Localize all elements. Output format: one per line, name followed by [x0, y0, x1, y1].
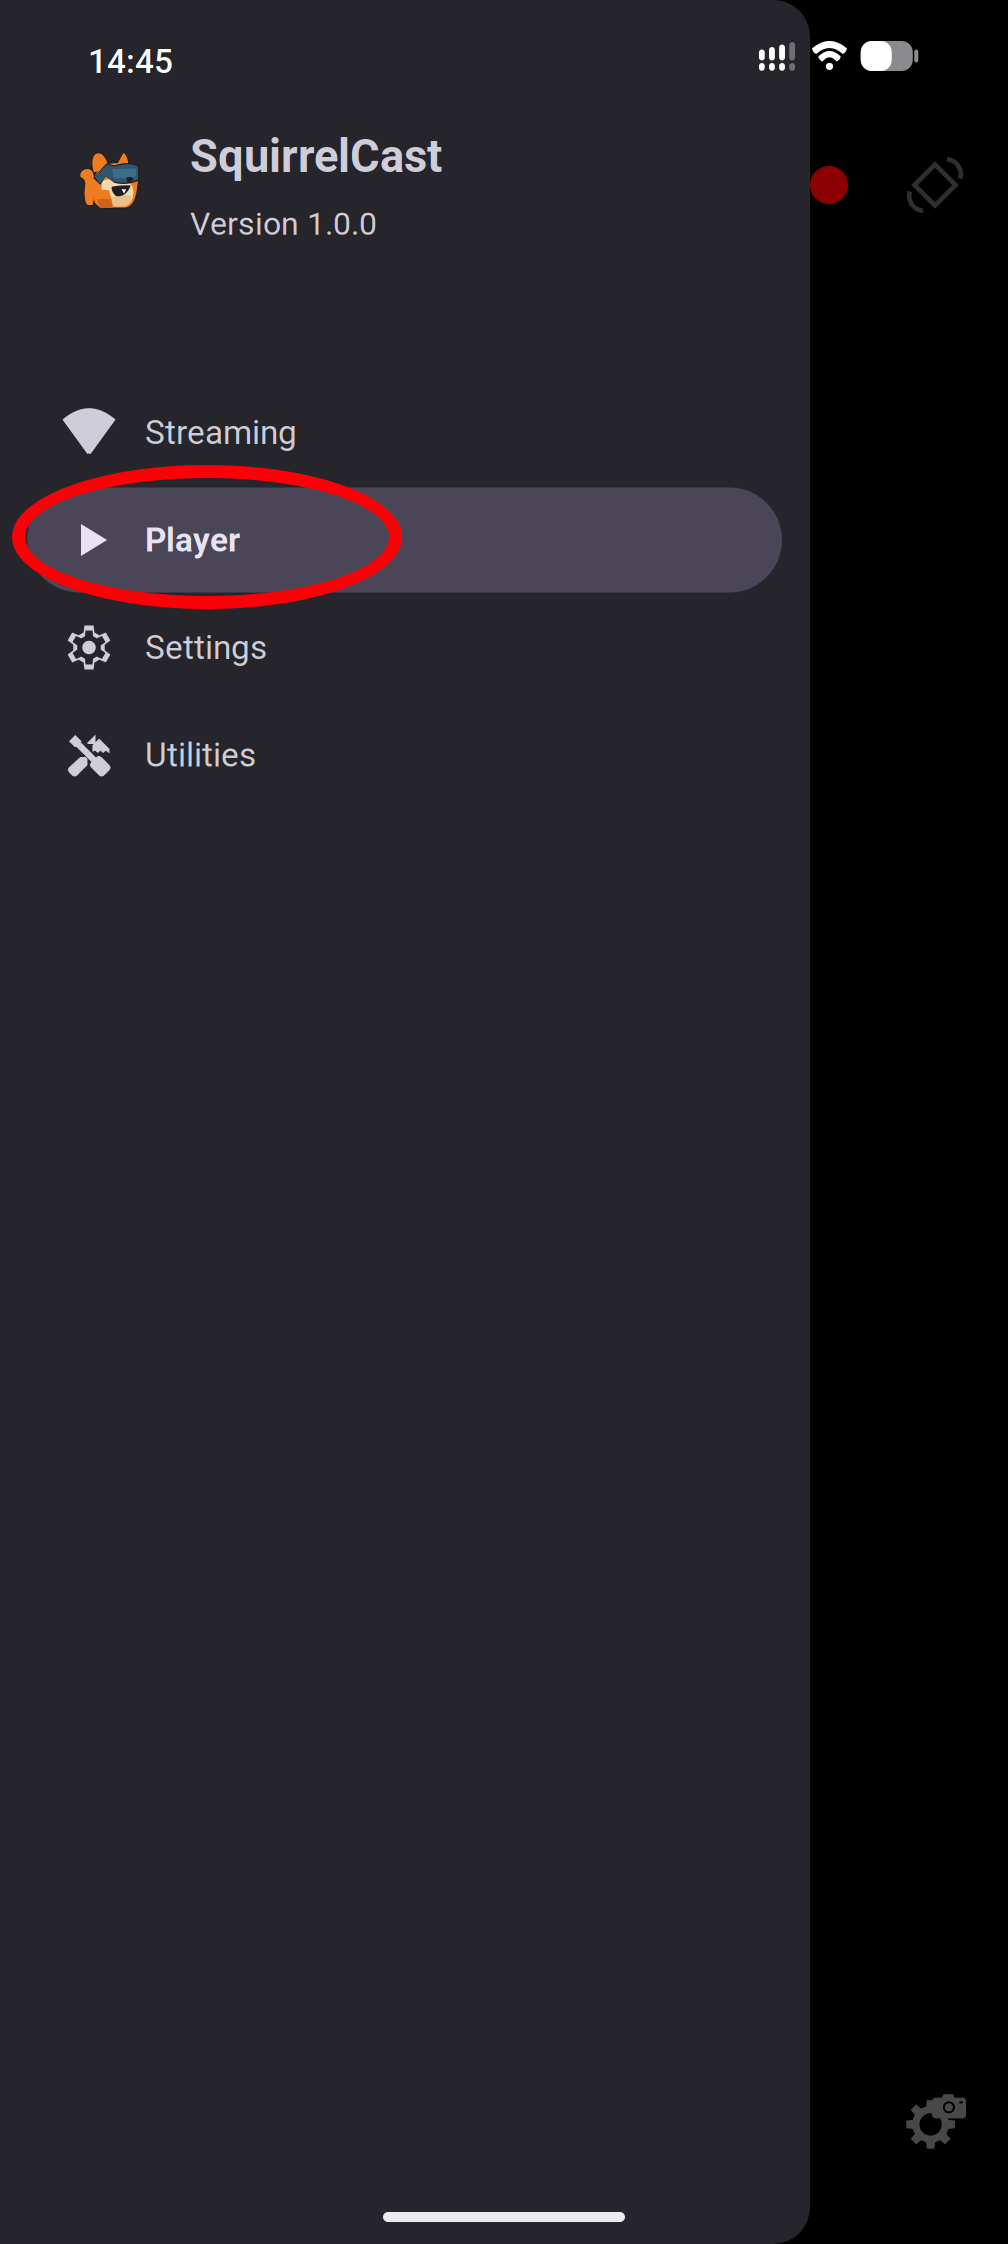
staticText: Utilities: [145, 735, 256, 775]
button[interactable]: Settings: [27, 595, 782, 700]
staticText: Version 1.0.0: [190, 205, 377, 242]
button[interactable]: Player: [27, 487, 782, 592]
button[interactable]: Utilities: [27, 702, 782, 807]
staticText: Player: [145, 520, 240, 560]
staticText: 14:45: [88, 42, 173, 81]
button[interactable]: Streaming: [27, 380, 782, 485]
staticText: Settings: [145, 628, 267, 667]
staticText: Streaming: [145, 413, 297, 452]
staticText: SquirrelCast: [190, 130, 442, 183]
